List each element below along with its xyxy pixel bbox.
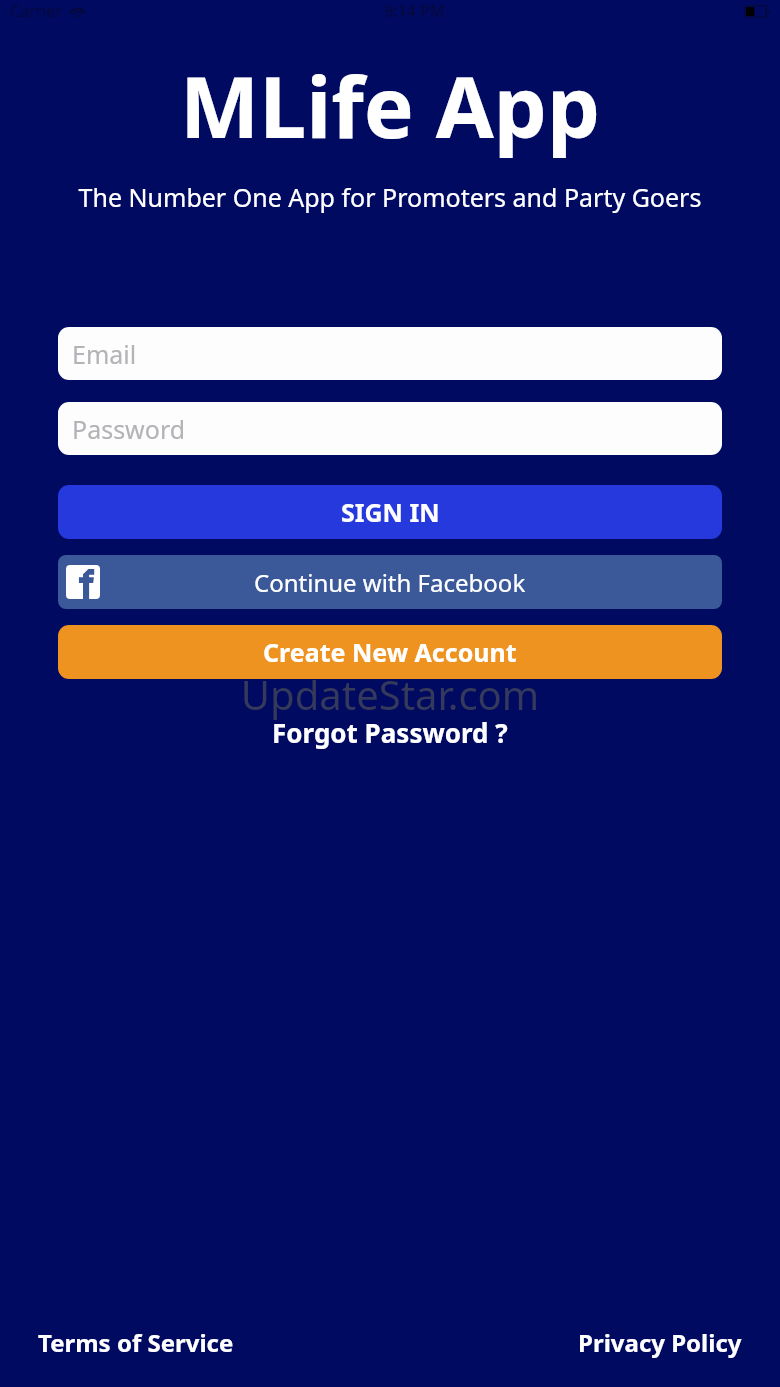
staticText: Terms of Service (38, 1326, 234, 1359)
button[interactable]: Privacy Policy (570, 1320, 750, 1365)
button[interactable]: SIGN IN (58, 485, 722, 539)
staticText: Email (72, 337, 137, 371)
staticText: 9:14 PM (384, 0, 445, 22)
staticText: Carrier (10, 0, 63, 22)
staticText: Create New Account (263, 635, 517, 669)
button[interactable]: Terms of Service (30, 1320, 242, 1365)
staticText: MLife App (0, 48, 780, 162)
staticText: Privacy Policy (578, 1326, 742, 1359)
staticText: Continue with Facebook (254, 566, 526, 599)
button[interactable]: Continue with Facebook (58, 555, 722, 609)
staticText: SIGN IN (341, 495, 440, 529)
staticText: Forgot Password ? (272, 715, 508, 750)
button[interactable]: Forgot Password ? (262, 711, 518, 754)
staticText: Password (72, 412, 186, 446)
staticText: The Number One App for Promoters and Par… (48, 180, 732, 214)
staticText: UpdateStar.com (0, 667, 780, 721)
button[interactable]: Password (58, 402, 722, 455)
button[interactable]: Create New Account (58, 625, 722, 679)
button[interactable]: Email (58, 327, 722, 380)
